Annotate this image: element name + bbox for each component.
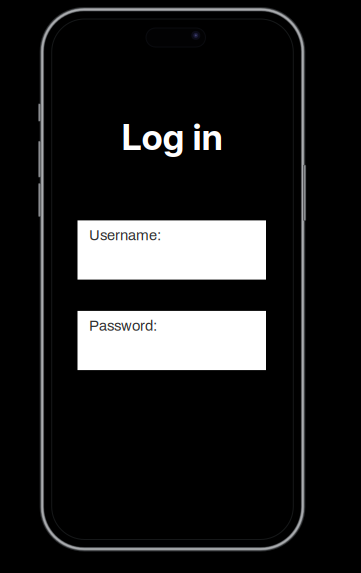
staticText: Log in: [121, 115, 222, 159]
button[interactable]: Password:: [77, 311, 266, 370]
staticText: Username:: [89, 227, 161, 243]
staticText: Password:: [89, 318, 157, 334]
button[interactable]: Username:: [77, 220, 266, 280]
